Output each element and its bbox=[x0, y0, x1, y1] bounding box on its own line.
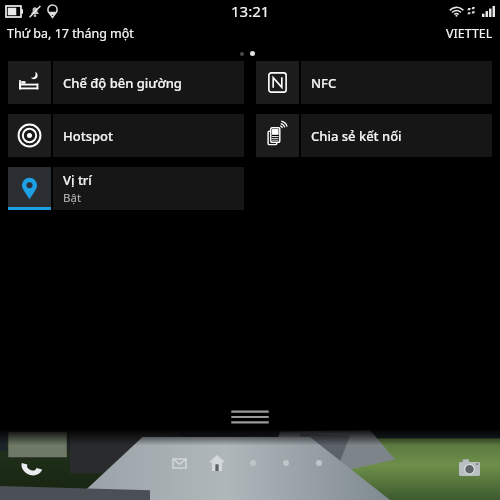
staticText: Bật bbox=[63, 190, 82, 206]
button[interactable]: Chia sẻ kết nối bbox=[256, 114, 492, 157]
button[interactable]: Vị trí bbox=[8, 167, 244, 210]
staticText: Vị trí bbox=[63, 171, 92, 189]
button[interactable]: Chế độ bên giường bbox=[8, 61, 244, 104]
button[interactable]: App shortcut bbox=[246, 456, 260, 470]
staticText: Thứ ba, 17 tháng một bbox=[7, 25, 134, 42]
button[interactable]: Home bbox=[207, 453, 227, 473]
button[interactable]: Phone bbox=[18, 454, 44, 480]
button[interactable]: Camera bbox=[456, 454, 482, 480]
button[interactable]: Hotspot bbox=[8, 114, 244, 157]
staticText: Chia sẻ kết nối bbox=[311, 127, 402, 145]
button[interactable]: App shortcut bbox=[312, 456, 326, 470]
staticText: VIETTEL bbox=[446, 25, 493, 42]
button[interactable]: Messages bbox=[170, 454, 188, 472]
staticText: 13:21 bbox=[231, 1, 270, 21]
button[interactable]: App shortcut bbox=[279, 456, 293, 470]
staticText: Hotspot bbox=[63, 127, 113, 145]
button[interactable]: Drag handle bbox=[224, 406, 276, 428]
button[interactable]: NFC bbox=[256, 61, 492, 104]
staticText: Chế độ bên giường bbox=[63, 74, 182, 92]
staticText: NFC bbox=[311, 74, 337, 92]
